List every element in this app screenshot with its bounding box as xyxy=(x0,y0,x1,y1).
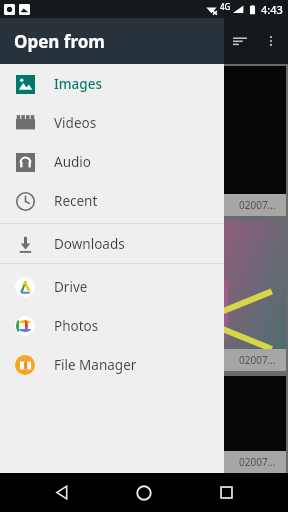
button[interactable]: Drive xyxy=(0,267,224,306)
staticText: Photos xyxy=(54,317,99,335)
staticText: 4G xyxy=(220,1,231,12)
button[interactable]: More options xyxy=(256,26,286,56)
staticText: Videos xyxy=(54,114,97,132)
staticText: SEND xyxy=(45,84,61,92)
button[interactable]: Images xyxy=(0,64,224,103)
staticText: Downloads xyxy=(54,235,125,253)
button[interactable]: Photos xyxy=(0,306,224,345)
button[interactable]: Home xyxy=(124,473,164,512)
staticText: Drive xyxy=(54,278,88,296)
button[interactable]: Sort xyxy=(224,25,256,57)
staticText: File Manager xyxy=(54,356,137,374)
staticText: Images xyxy=(54,75,102,93)
staticText: 02007… xyxy=(239,455,276,469)
button[interactable]: Recents xyxy=(206,473,246,512)
staticText: Open from xyxy=(14,30,105,53)
button[interactable]: Videos xyxy=(0,103,224,142)
staticText: 02007… xyxy=(239,198,276,212)
staticText: Audio xyxy=(54,153,91,171)
button[interactable]: Audio xyxy=(0,142,224,181)
button[interactable]: Back xyxy=(42,473,82,512)
staticText: 02007… xyxy=(239,353,276,367)
button[interactable]: Downloads xyxy=(0,224,224,263)
button[interactable]: Recent xyxy=(0,181,224,220)
staticText: 4:43 xyxy=(261,2,283,17)
staticText: Recent xyxy=(54,192,98,210)
button[interactable]: File Manager xyxy=(0,345,224,384)
